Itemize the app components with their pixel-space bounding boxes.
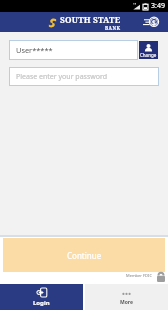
staticText: $	[152, 18, 156, 27]
button[interactable]: Change	[139, 41, 158, 59]
button[interactable]: Continue	[3, 238, 165, 272]
staticText: Login	[33, 299, 50, 307]
button[interactable]: Please enter your password	[9, 67, 159, 86]
staticText: Member FDIC	[126, 273, 152, 278]
staticText: User*****	[16, 45, 53, 55]
button[interactable]: Quick balance	[140, 12, 160, 32]
staticText: SOUTH STATE	[60, 14, 121, 25]
staticText: Change	[140, 52, 157, 58]
button[interactable]: Login	[0, 284, 83, 310]
staticText: 3:49	[151, 1, 165, 11]
button[interactable]: More	[85, 284, 168, 310]
button[interactable]: User*****	[9, 40, 138, 60]
staticText: BANK	[105, 25, 121, 31]
staticText: Please enter your password	[16, 72, 108, 82]
staticText: Continue	[67, 250, 102, 261]
staticText: More	[120, 299, 133, 306]
